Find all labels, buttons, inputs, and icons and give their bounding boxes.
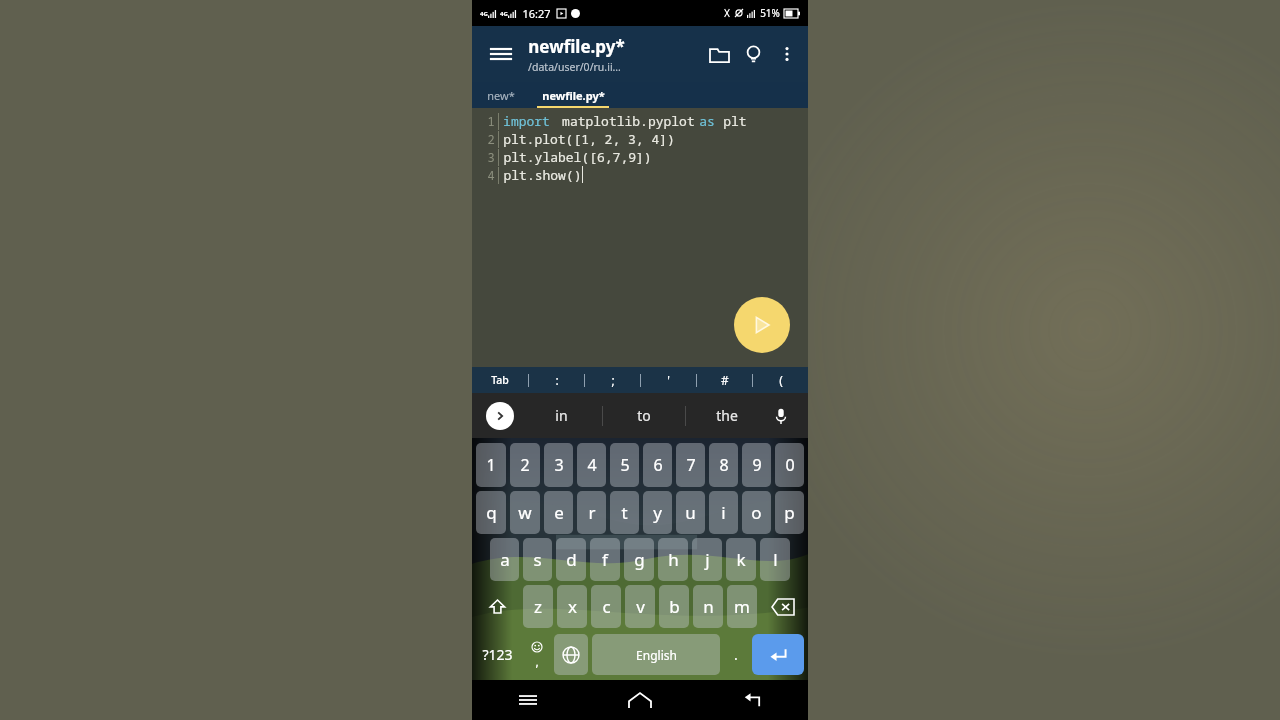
staticText: i bbox=[721, 501, 726, 524]
button[interactable]: y bbox=[643, 491, 672, 534]
staticText: 9 bbox=[752, 454, 762, 476]
button[interactable]: Tab bbox=[472, 367, 528, 393]
staticText: 3 bbox=[554, 454, 564, 476]
button[interactable]: in bbox=[520, 393, 602, 438]
button[interactable]: a bbox=[490, 538, 519, 581]
staticText: new* bbox=[487, 88, 515, 103]
staticText: 16:27 bbox=[522, 6, 551, 21]
button[interactable]: Backspace bbox=[759, 583, 806, 630]
staticText: 4 bbox=[587, 454, 597, 476]
staticText: # bbox=[721, 372, 729, 388]
button[interactable]: Back bbox=[696, 680, 808, 720]
button[interactable]: 9 bbox=[742, 443, 771, 487]
button[interactable]: 0 bbox=[775, 443, 804, 487]
button[interactable]: 3 bbox=[544, 443, 573, 487]
button[interactable]: . bbox=[722, 632, 750, 677]
button[interactable]: Recent apps bbox=[472, 680, 584, 720]
staticText: newfile.py* bbox=[542, 88, 605, 103]
button[interactable]: w bbox=[510, 491, 540, 534]
button[interactable]: x bbox=[557, 585, 587, 628]
button[interactable]: v bbox=[625, 585, 655, 628]
button[interactable]: English bbox=[592, 634, 720, 675]
staticText: English bbox=[636, 647, 677, 663]
button[interactable]: Emoji and comma bbox=[521, 632, 552, 677]
staticText: y bbox=[653, 501, 662, 524]
button[interactable]: i bbox=[709, 491, 738, 534]
button[interactable]: Run script bbox=[734, 297, 790, 353]
button[interactable]: # bbox=[697, 367, 752, 393]
button[interactable]: 4 bbox=[577, 443, 606, 487]
button[interactable]: Enter bbox=[752, 634, 804, 675]
button[interactable]: Open file bbox=[702, 37, 736, 71]
button[interactable]: m bbox=[727, 585, 757, 628]
button[interactable]: More suggestions bbox=[486, 402, 514, 430]
button[interactable]: ; bbox=[585, 367, 640, 393]
button[interactable]: new* bbox=[472, 82, 530, 108]
button[interactable]: ' bbox=[641, 367, 696, 393]
button[interactable]: l bbox=[760, 538, 790, 581]
button[interactable]: h bbox=[658, 538, 688, 581]
button[interactable]: More options bbox=[770, 37, 804, 71]
staticText: , bbox=[535, 653, 539, 669]
staticText: g bbox=[634, 548, 645, 571]
staticText: x bbox=[568, 595, 577, 618]
button[interactable]: o bbox=[742, 491, 771, 534]
staticText: . bbox=[734, 645, 738, 664]
button[interactable]: r bbox=[577, 491, 606, 534]
button[interactable]: newfile.py* bbox=[530, 82, 616, 108]
staticText: Tab bbox=[491, 373, 509, 387]
button[interactable]: Open navigation menu bbox=[484, 37, 518, 71]
staticText: p bbox=[784, 501, 795, 524]
staticText: 6 bbox=[653, 454, 663, 476]
button[interactable]: Hints bbox=[736, 37, 770, 71]
button[interactable]: 5 bbox=[610, 443, 639, 487]
staticText: r bbox=[588, 501, 596, 524]
button[interactable]: Shift bbox=[474, 583, 521, 630]
button[interactable]: n bbox=[693, 585, 723, 628]
button[interactable]: b bbox=[659, 585, 689, 628]
button[interactable]: 1 bbox=[476, 443, 506, 487]
button[interactable]: j bbox=[692, 538, 722, 581]
staticText: 4G bbox=[480, 10, 488, 18]
button[interactable]: e bbox=[544, 491, 573, 534]
button[interactable]: Home bbox=[584, 680, 696, 720]
staticText: a bbox=[500, 548, 510, 571]
staticText: ( bbox=[779, 372, 783, 388]
button[interactable]: the bbox=[686, 393, 768, 438]
staticText: h bbox=[668, 548, 679, 571]
staticText: plt bbox=[715, 112, 747, 130]
button[interactable]: c bbox=[591, 585, 621, 628]
button[interactable]: f bbox=[590, 538, 620, 581]
staticText: k bbox=[736, 548, 746, 571]
staticText: : bbox=[555, 372, 559, 388]
staticText: 1 bbox=[486, 454, 496, 476]
staticText: t bbox=[621, 501, 628, 524]
staticText: 8 bbox=[719, 454, 729, 476]
button[interactable]: 2 bbox=[510, 443, 540, 487]
button[interactable]: Switch keyboard language bbox=[554, 634, 588, 675]
button[interactable]: to bbox=[603, 393, 685, 438]
button[interactable]: u bbox=[676, 491, 705, 534]
button[interactable]: d bbox=[556, 538, 586, 581]
button[interactable]: p bbox=[775, 491, 804, 534]
staticText: m bbox=[734, 595, 750, 618]
button[interactable]: t bbox=[610, 491, 639, 534]
button[interactable]: q bbox=[476, 491, 506, 534]
button[interactable]: 8 bbox=[709, 443, 738, 487]
button[interactable]: ?123 bbox=[474, 632, 521, 677]
staticText: e bbox=[554, 501, 564, 524]
button[interactable]: k bbox=[726, 538, 756, 581]
button[interactable]: s bbox=[523, 538, 552, 581]
button[interactable]: g bbox=[624, 538, 654, 581]
button[interactable]: : bbox=[529, 367, 584, 393]
staticText: j bbox=[705, 548, 710, 571]
button[interactable]: 7 bbox=[676, 443, 705, 487]
button[interactable]: Voice input bbox=[766, 401, 796, 431]
button[interactable]: z bbox=[523, 585, 553, 628]
staticText: ?123 bbox=[482, 645, 513, 664]
staticText: s bbox=[533, 548, 542, 571]
staticText: f bbox=[602, 548, 608, 571]
staticText: w bbox=[518, 501, 532, 524]
button[interactable]: 6 bbox=[643, 443, 672, 487]
button[interactable]: ( bbox=[753, 367, 808, 393]
